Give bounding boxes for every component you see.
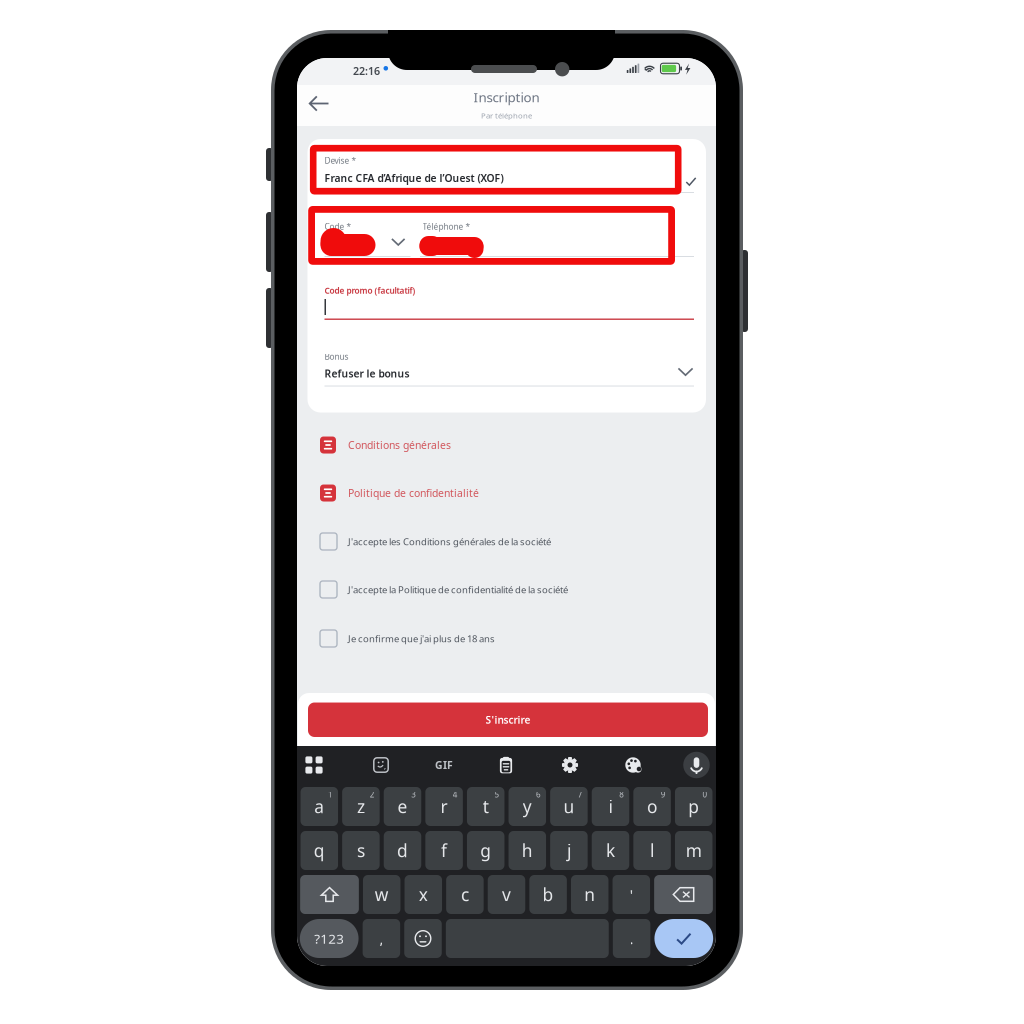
button[interactable]: , (363, 919, 400, 958)
staticText: 2 (370, 789, 375, 800)
button[interactable]: y (509, 787, 546, 826)
staticText: Inscription (473, 88, 539, 106)
staticText: u (563, 795, 574, 818)
button[interactable]: J'accepte la Politique de confidentialit… (297, 567, 716, 611)
staticText: Refuser le bonus (324, 366, 409, 380)
button[interactable]: J'accepte les Conditions générales de la… (297, 519, 716, 563)
button[interactable]: Politique de confidentialité (297, 472, 716, 514)
button[interactable]: Enter (654, 919, 713, 958)
button[interactable]: h (509, 831, 546, 870)
staticText: GIF (435, 758, 453, 772)
button[interactable]: l (633, 831, 671, 870)
staticText: Code * (324, 221, 351, 232)
staticText: Téléphone * (422, 221, 470, 232)
staticText: Code promo (facultatif) (324, 285, 415, 296)
button[interactable]: Backspace (654, 875, 713, 914)
button[interactable]: Back (297, 85, 341, 126)
button[interactable]: Symbols (300, 919, 359, 958)
staticText: 1 (328, 789, 333, 800)
button[interactable]: m (675, 831, 712, 870)
staticText: g (480, 839, 491, 862)
button[interactable]: Themes (297, 746, 331, 780)
button[interactable]: Conditions générales (297, 424, 716, 466)
staticText: 8 (619, 789, 624, 800)
button[interactable]: u (550, 787, 588, 826)
button[interactable]: Je confirme que j'ai plus de 18 ans (297, 616, 716, 660)
staticText: m (686, 839, 702, 862)
button[interactable]: S'inscrire (297, 693, 697, 727)
staticText: 5 (494, 789, 499, 800)
button[interactable]: Switch keyboard (297, 746, 331, 780)
button[interactable]: g (467, 831, 504, 870)
button[interactable]: Stickers (297, 746, 331, 780)
staticText: ?123 (314, 929, 344, 948)
button[interactable]: i (592, 787, 629, 826)
button[interactable]: Emoji (404, 919, 442, 958)
staticText: Par téléphone (481, 110, 532, 121)
button[interactable]: Clipboard (297, 746, 331, 780)
button[interactable]: v (488, 875, 525, 914)
button[interactable]: z (342, 787, 380, 826)
staticText: j (567, 839, 571, 862)
staticText: a (314, 795, 324, 818)
staticText: x (419, 883, 428, 906)
button[interactable]: Settings (297, 746, 331, 780)
button[interactable]: x (404, 875, 442, 914)
button[interactable]: Voice input (297, 746, 331, 780)
staticText: l (650, 839, 654, 862)
button[interactable]: d (384, 831, 421, 870)
button[interactable]: Devise * (307, 139, 706, 192)
button[interactable]: s (342, 831, 380, 870)
button[interactable]: . (613, 919, 650, 958)
staticText: 4 (453, 789, 458, 800)
button[interactable]: Shift (300, 875, 359, 914)
staticText: v (502, 883, 511, 906)
button[interactable]: ' (612, 875, 650, 914)
staticText: J'accepte la Politique de confidentialit… (348, 583, 568, 596)
staticText: 0 (702, 789, 707, 800)
button[interactable]: Bonus (307, 139, 706, 206)
button[interactable]: f (425, 831, 463, 870)
staticText: Politique de confidentialité (348, 486, 479, 500)
staticText: p (688, 795, 699, 818)
button[interactable] (307, 139, 393, 203)
staticText: 7 (578, 789, 583, 800)
button[interactable]: p (675, 787, 712, 826)
button[interactable]: b (529, 875, 567, 914)
staticText: b (543, 883, 554, 906)
staticText: h (522, 839, 533, 862)
button[interactable]: n (571, 875, 608, 914)
button[interactable]: q (301, 831, 338, 870)
button[interactable]: o (633, 787, 671, 826)
staticText: e (397, 795, 407, 818)
staticText: r (441, 795, 448, 818)
staticText: i (608, 795, 612, 818)
staticText: w (375, 883, 389, 906)
button[interactable]: e (384, 787, 421, 826)
staticText: 6 (536, 789, 541, 800)
staticText: d (397, 839, 408, 862)
staticText: t (483, 795, 489, 818)
button[interactable]: j (550, 831, 588, 870)
button[interactable]: w (363, 875, 400, 914)
button[interactable]: GIF (297, 746, 331, 780)
button[interactable]: k (592, 831, 629, 870)
staticText: , (379, 928, 383, 948)
staticText: o (647, 795, 657, 818)
staticText: q (314, 839, 325, 862)
staticText: y (523, 795, 532, 818)
staticText: Devise * (324, 155, 356, 166)
staticText: f (441, 839, 447, 862)
button[interactable]: t (467, 787, 504, 826)
button[interactable]: r (425, 787, 463, 826)
button[interactable]: a (301, 787, 338, 826)
staticText: z (357, 795, 365, 818)
staticText: n (584, 883, 595, 906)
staticText: 9 (661, 789, 666, 800)
staticText: Franc CFA d’Afrique de l’Ouest (XOF) (324, 171, 503, 185)
staticText: s (357, 839, 365, 862)
button[interactable]: c (446, 875, 484, 914)
staticText: J'accepte les Conditions générales de la… (348, 535, 551, 548)
